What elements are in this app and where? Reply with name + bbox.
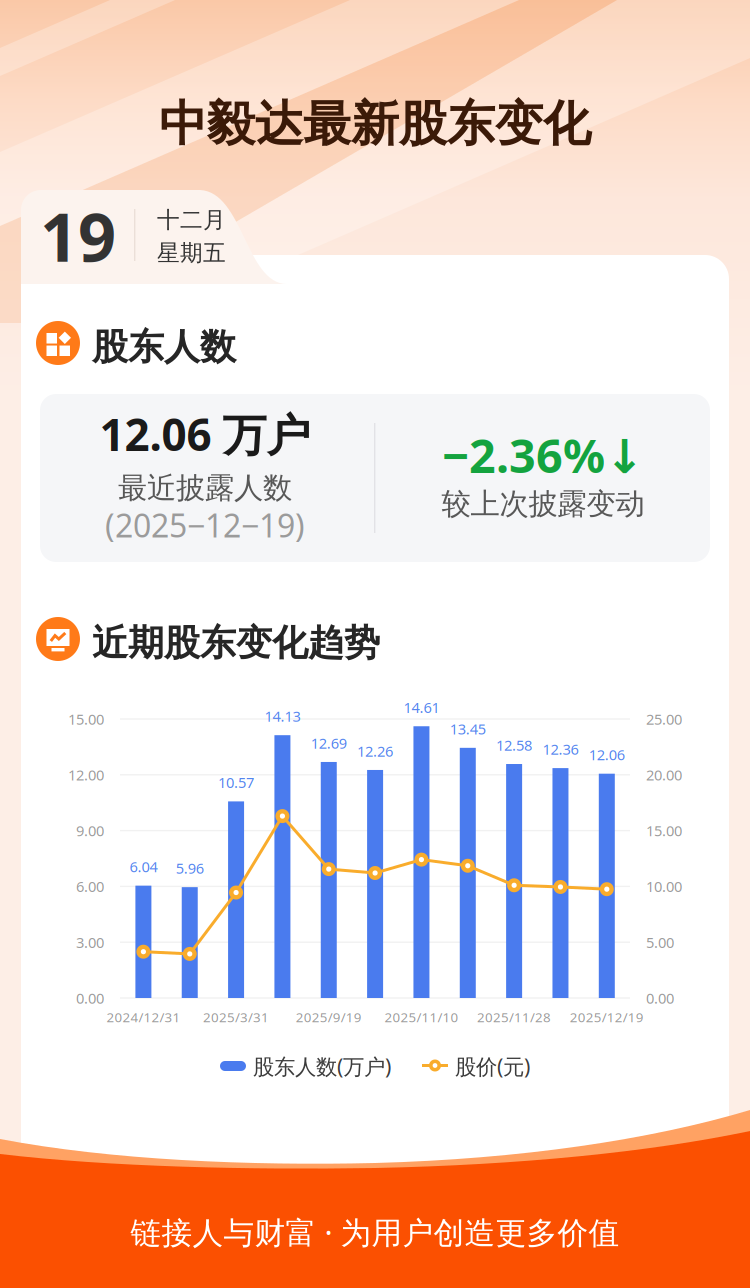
- staticText: 10.00: [646, 877, 682, 896]
- staticText: 12.06: [589, 745, 625, 764]
- staticText: 股东人数(万户): [253, 1052, 391, 1080]
- staticText: (2025−12−19): [105, 504, 305, 546]
- staticText: 14.61: [403, 697, 439, 717]
- staticText: 最近披露人数: [118, 470, 292, 506]
- staticText: 12.00: [68, 765, 104, 785]
- staticText: 25.00: [646, 709, 682, 729]
- staticText: 15.00: [646, 821, 682, 840]
- staticText: 14.13: [264, 706, 300, 726]
- staticText: 6.04: [129, 857, 157, 876]
- staticText: 19: [40, 192, 116, 280]
- staticText: 15.00: [68, 709, 104, 729]
- staticText: 20.00: [646, 765, 682, 785]
- staticText: 10.57: [218, 773, 254, 792]
- staticText: 5.00: [646, 932, 674, 952]
- staticText: 股价(元): [455, 1052, 530, 1080]
- staticText: 12.58: [496, 735, 532, 755]
- staticText: 0.00: [76, 988, 104, 1008]
- staticText: 2025/3/31: [203, 1008, 269, 1026]
- staticText: −2.36%↓: [442, 424, 644, 486]
- staticText: 2025/12/19: [570, 1008, 644, 1026]
- staticText: 中毅达最新股东变化: [159, 94, 591, 153]
- staticText: 12.69: [311, 733, 347, 753]
- staticText: 3.00: [76, 932, 104, 952]
- staticText: 12.36: [542, 739, 578, 759]
- staticText: 较上次披露变动: [441, 486, 644, 522]
- staticText: 5.96: [176, 858, 204, 878]
- staticText: 十二月: [157, 206, 226, 234]
- staticText: 13.45: [450, 719, 486, 739]
- staticText: 2025/9/19: [296, 1008, 362, 1026]
- staticText: 0.00: [646, 988, 674, 1008]
- staticText: 9.00: [76, 821, 104, 840]
- staticText: 2025/11/28: [477, 1008, 551, 1026]
- staticText: 2025/11/10: [384, 1008, 458, 1026]
- staticText: 12.26: [357, 741, 393, 761]
- staticText: 6.00: [76, 877, 104, 896]
- staticText: 近期股东变化趋势: [92, 621, 380, 665]
- staticText: 股东人数: [92, 325, 236, 369]
- staticText: 2024/12/31: [106, 1008, 180, 1026]
- staticText: 星期五: [157, 239, 226, 267]
- staticText: 链接人与财富 · 为用户创造更多价值: [130, 1212, 619, 1252]
- staticText: 12.06 万户: [99, 405, 310, 463]
